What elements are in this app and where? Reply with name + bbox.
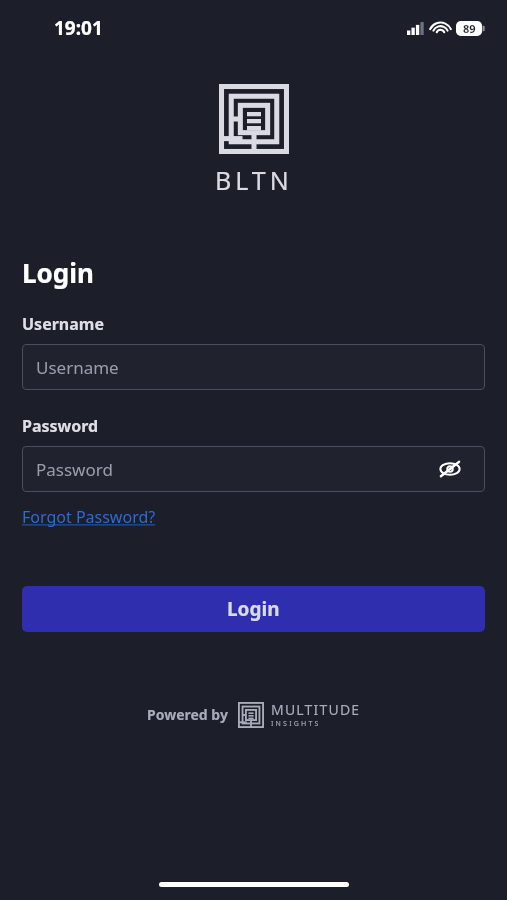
staticText: Login <box>227 596 280 622</box>
button[interactable]: Password <box>22 446 485 492</box>
staticText: Powered by <box>147 705 228 724</box>
staticText: BLTN <box>215 163 293 197</box>
staticText: Login <box>22 255 94 290</box>
staticText: 89 <box>463 21 476 36</box>
button[interactable]: Forgot Password? <box>22 506 156 528</box>
button[interactable]: Username <box>22 344 485 390</box>
staticText: Password <box>22 415 99 437</box>
staticText: Username <box>22 313 104 335</box>
staticText: Forgot Password? <box>22 506 156 528</box>
button[interactable]: Show password <box>437 456 463 482</box>
staticText: Username <box>36 356 119 379</box>
button[interactable]: Login <box>22 586 485 632</box>
staticText: MULTITUDE <box>271 700 361 719</box>
staticText: 19:01 <box>54 15 103 41</box>
staticText: Password <box>36 458 113 481</box>
staticText: INSIGHTS <box>271 719 321 729</box>
